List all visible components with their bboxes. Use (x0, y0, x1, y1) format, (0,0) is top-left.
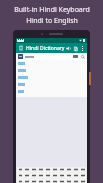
staticText: Built-in Hindi Keyboard (14, 5, 90, 15)
button[interactable]: App icon (18, 45, 24, 51)
button[interactable]: Key (51, 172, 58, 178)
button[interactable] (16, 74, 87, 81)
button[interactable]: Key (17, 167, 23, 172)
button[interactable]: Key (65, 172, 72, 178)
button[interactable] (16, 60, 87, 67)
button[interactable]: Key (51, 167, 58, 172)
button[interactable]: Key (17, 172, 23, 178)
button[interactable]: Key (23, 172, 30, 178)
button[interactable] (16, 88, 87, 95)
button[interactable]: Search (80, 54, 85, 59)
button[interactable]: Key (37, 178, 44, 183)
button[interactable]: Key (65, 167, 72, 172)
button[interactable]: Key (30, 172, 37, 178)
button[interactable]: Key (79, 172, 86, 178)
button[interactable]: More options (79, 45, 85, 51)
button[interactable]: Key (72, 178, 79, 183)
button[interactable]: Key (65, 178, 72, 183)
button[interactable]: Key (44, 172, 51, 178)
button[interactable]: Key (17, 178, 23, 183)
button[interactable]: Key (37, 172, 44, 178)
button[interactable]: Key (79, 167, 86, 172)
button[interactable]: Key (23, 167, 30, 172)
staticText: Hindi Dictionary (26, 45, 65, 52)
button[interactable]: Key (72, 167, 79, 172)
staticText: Hindi to English (26, 16, 78, 26)
button[interactable]: Copy (72, 45, 79, 52)
button[interactable]: Key (30, 178, 37, 183)
button[interactable]: Key (37, 167, 44, 172)
button[interactable]: Key (30, 167, 37, 172)
button[interactable]: Key (44, 167, 51, 172)
button[interactable]: Key (51, 178, 58, 183)
button[interactable]: Key (58, 172, 65, 178)
button[interactable]: Key (79, 178, 86, 183)
button[interactable] (16, 67, 87, 74)
button[interactable]: Key (58, 178, 65, 183)
button[interactable]: Key (23, 178, 30, 183)
button[interactable]: Key (72, 172, 79, 178)
button[interactable]: Search (16, 53, 87, 60)
button[interactable]: Key (44, 178, 51, 183)
button[interactable]: Key (58, 167, 65, 172)
button[interactable] (16, 81, 87, 88)
button[interactable]: Speak (65, 45, 72, 52)
